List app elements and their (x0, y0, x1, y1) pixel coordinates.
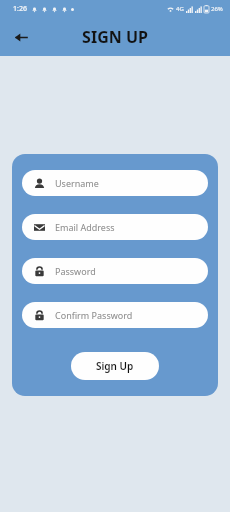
staticText: SIGN UP (82, 26, 148, 48)
staticText: 1:26 (13, 4, 27, 14)
button[interactable]: Sign Up (71, 352, 159, 380)
staticText: Confirm Password (55, 309, 133, 321)
button[interactable]: Password (22, 258, 208, 284)
staticText: Email Address (55, 221, 115, 233)
staticText: Password (55, 265, 96, 277)
staticText: 4G (176, 5, 184, 13)
button[interactable]: Email Address (22, 214, 208, 240)
staticText: Username (55, 177, 99, 189)
staticText: Sign Up (96, 359, 134, 373)
button[interactable]: Back (6, 22, 36, 52)
button[interactable]: Confirm Password (22, 302, 208, 328)
button[interactable]: Username (22, 170, 208, 196)
staticText: 26% (211, 5, 223, 13)
